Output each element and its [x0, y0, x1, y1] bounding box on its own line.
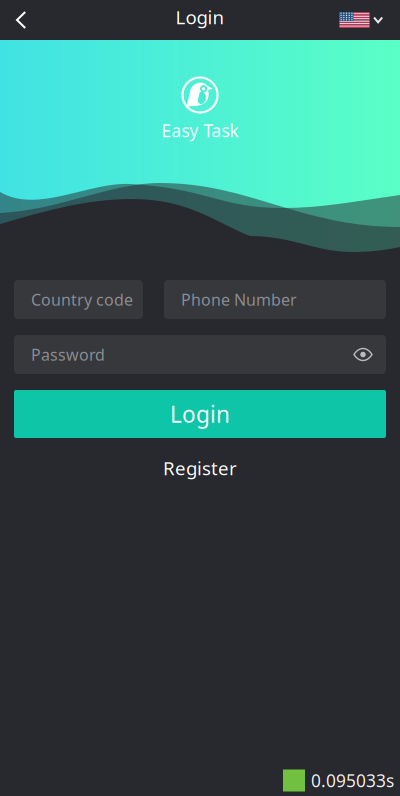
button[interactable]: Select language — [327, 0, 400, 40]
button[interactable]: Register — [14, 454, 386, 482]
button[interactable]: Login — [14, 390, 386, 438]
button[interactable]: Show password — [340, 347, 386, 361]
staticText: Register — [163, 456, 237, 480]
staticText: Login — [175, 5, 224, 29]
staticText: Password — [31, 344, 105, 365]
staticText: Country code — [31, 289, 133, 310]
staticText: Login — [170, 399, 230, 429]
staticText: 0.095033s — [311, 769, 394, 792]
staticText: Easy Task — [161, 119, 238, 142]
button[interactable]: Back — [0, 0, 45, 40]
staticText: Phone Number — [181, 289, 297, 310]
